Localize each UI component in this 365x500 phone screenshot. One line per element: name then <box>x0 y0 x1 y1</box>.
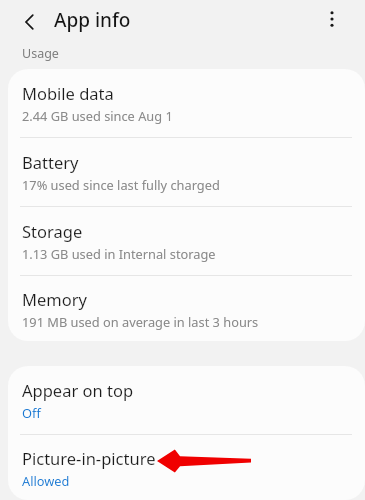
staticText: Memory <box>22 288 87 310</box>
staticText: App info <box>54 7 131 33</box>
staticText: Usage <box>22 45 59 62</box>
staticText: Appear on top <box>22 379 134 401</box>
staticText: Allowed <box>22 472 70 489</box>
staticText: Storage <box>22 220 83 242</box>
button[interactable]: Picture-in-picture <box>8 435 365 500</box>
button[interactable]: Battery <box>8 138 365 206</box>
button[interactable]: Appear on top <box>8 366 365 434</box>
staticText: 1.13 GB used in Internal storage <box>22 245 216 262</box>
button[interactable]: Memory <box>8 276 365 341</box>
staticText: 2.44 GB used since Aug 1 <box>22 107 173 124</box>
staticText: Mobile data <box>22 82 114 104</box>
staticText: Picture-in-picture <box>22 447 156 469</box>
button[interactable]: Storage <box>8 207 365 275</box>
staticText: Battery <box>22 151 79 173</box>
button[interactable]: More options <box>311 0 353 37</box>
button[interactable]: Back <box>10 3 50 40</box>
staticText: 17% used since last fully charged <box>22 176 220 193</box>
staticText: Off <box>22 404 41 421</box>
button[interactable]: Mobile data <box>8 69 365 137</box>
staticText: 191 MB used on average in last 3 hours <box>22 313 259 330</box>
